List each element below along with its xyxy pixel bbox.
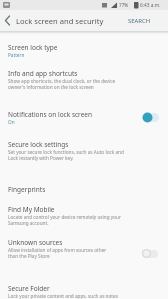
staticText: Allow installation of apps from sources … xyxy=(8,247,107,259)
staticText: Screen lock type xyxy=(8,43,58,52)
button[interactable]: Secure Folder xyxy=(0,284,168,299)
button[interactable]: Find My Mobile xyxy=(0,205,168,236)
staticText: Info and app shortcuts xyxy=(8,69,78,78)
staticText: Show app shortcuts, the dual clock, or t… xyxy=(8,78,116,90)
button[interactable]: Fingerprints xyxy=(0,185,168,200)
staticText: 77% xyxy=(119,2,129,8)
button[interactable]: Secure lock settings xyxy=(0,140,168,173)
staticText: Lock screen and security xyxy=(16,16,104,26)
button[interactable]: Info and app shortcuts xyxy=(0,69,168,101)
staticText: On xyxy=(8,119,15,125)
staticText: Set your secure lock functions, such as … xyxy=(8,149,124,161)
staticText: Secure Folder xyxy=(8,284,50,293)
staticText: Pattern xyxy=(8,52,25,58)
staticText: 6:43 a.m. xyxy=(140,2,161,9)
staticText: Notifications on lock screen xyxy=(8,110,93,119)
button[interactable]: Notifications on lock screen xyxy=(0,110,168,135)
staticText: Fingerprints xyxy=(8,185,46,194)
staticText: Locate and control your device remotely … xyxy=(8,214,121,226)
button[interactable] xyxy=(0,10,16,31)
button[interactable]: Screen lock type xyxy=(0,43,168,66)
staticText: Find My Mobile xyxy=(8,205,55,214)
staticText: Lock your private content and apps, such… xyxy=(8,293,118,299)
button[interactable]: SEARCH xyxy=(124,10,164,31)
staticText: Unknown sources xyxy=(8,238,63,247)
staticText: Secure lock settings xyxy=(8,140,69,149)
button[interactable]: Unknown sources xyxy=(0,238,168,270)
staticText: SEARCH xyxy=(128,17,151,25)
